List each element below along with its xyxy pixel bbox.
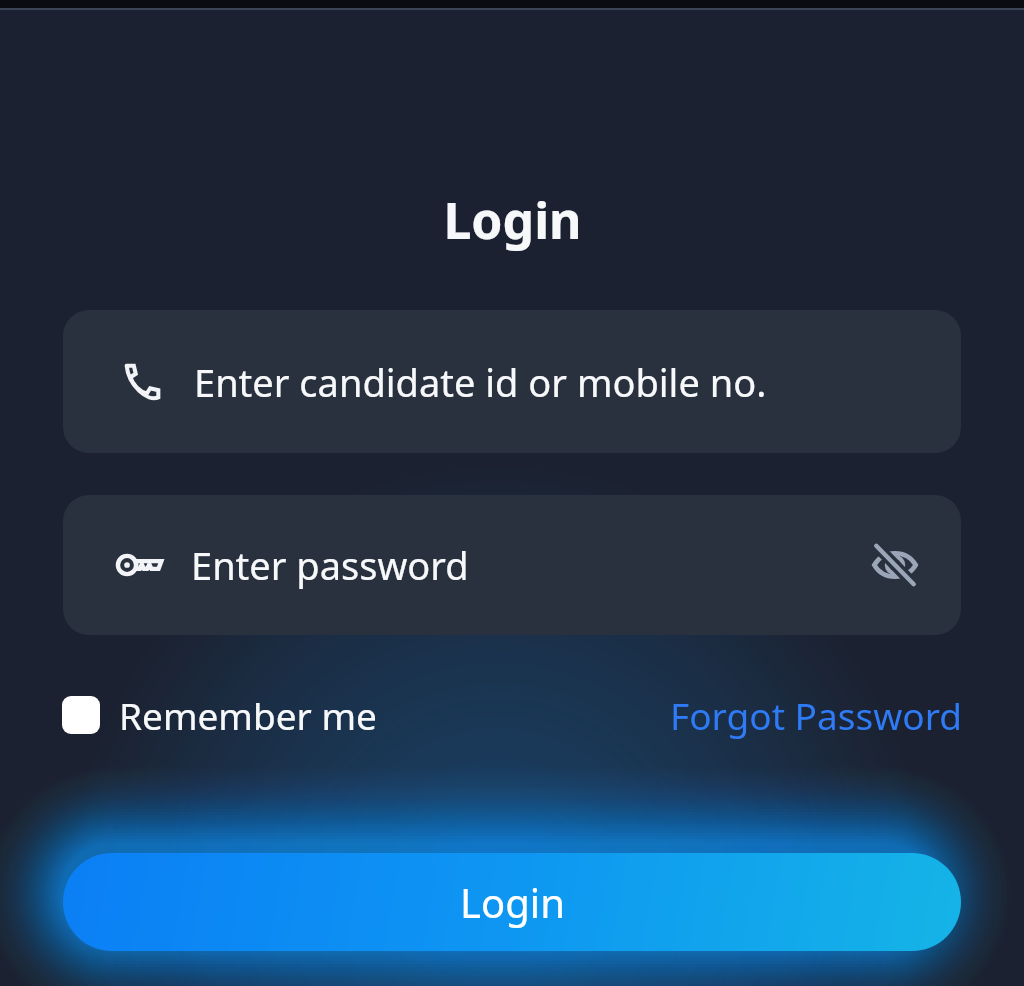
button[interactable]: Remember me <box>62 690 383 740</box>
staticText: Login <box>443 186 582 254</box>
staticText: Enter password <box>191 539 469 591</box>
button[interactable]: Login <box>63 853 961 951</box>
button[interactable]: Show password <box>865 535 925 595</box>
staticText: Remember me <box>119 690 377 740</box>
staticText: Enter candidate id or mobile no. <box>194 356 767 408</box>
button[interactable]: Forgot Password <box>670 690 962 740</box>
staticText: Login <box>460 875 565 929</box>
staticText: Forgot Password <box>670 690 962 740</box>
button[interactable]: Enter password <box>63 495 961 635</box>
button[interactable]: Enter candidate id or mobile no. <box>63 310 961 453</box>
